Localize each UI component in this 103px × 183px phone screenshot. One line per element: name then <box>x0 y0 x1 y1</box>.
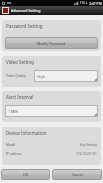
staticText: 1 MIN <box>8 109 18 114</box>
staticText: Device Information <box>6 130 47 136</box>
staticText: Cancel <box>72 172 83 177</box>
button[interactable]: OK <box>1 169 50 180</box>
button[interactable]: Modify Password <box>5 37 98 49</box>
staticText: IP address <box>6 152 22 156</box>
staticText: Video Quality <box>6 74 26 78</box>
button[interactable]: 1 MIN <box>5 105 98 117</box>
button[interactable]: Cancel <box>52 169 102 180</box>
staticText: Key Setting <box>80 143 97 147</box>
staticText: Advanced Setting <box>11 8 41 13</box>
staticText: Video Setting <box>6 59 35 65</box>
staticText: Model <box>6 143 16 147</box>
staticText: FULL <box>80 1 88 5</box>
staticText: Modify Password <box>37 41 66 46</box>
staticText: OK <box>23 172 28 177</box>
staticText: High <box>37 74 45 79</box>
staticText: 172.16.49.161 <box>76 152 97 156</box>
button[interactable]: High <box>34 70 98 82</box>
staticText: 2:47 PM <box>89 1 102 6</box>
staticText: Alert Interval <box>6 94 34 100</box>
staticText: Password Setting <box>6 23 43 29</box>
